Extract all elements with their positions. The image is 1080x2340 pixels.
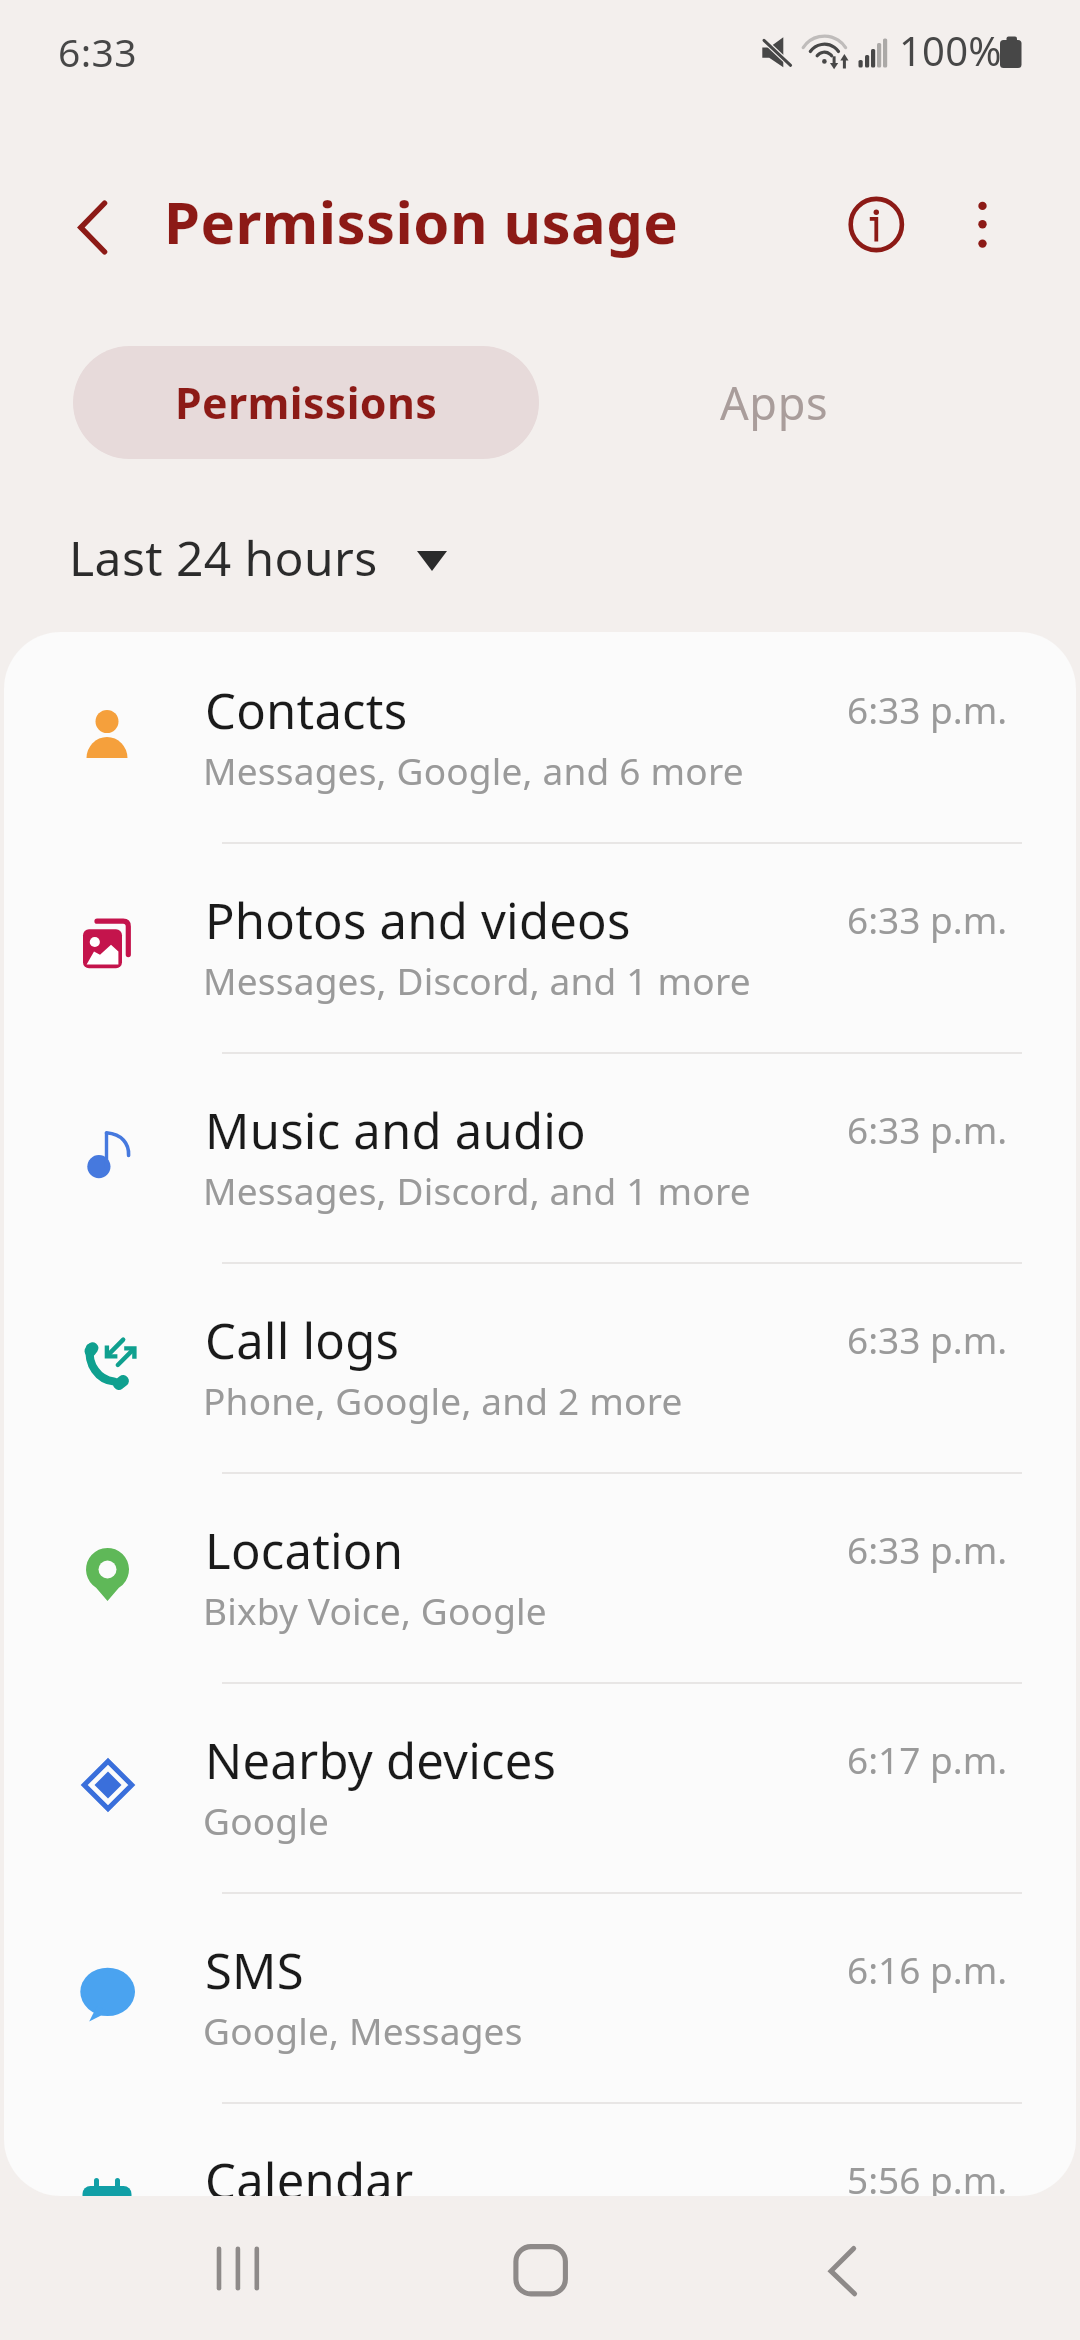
button[interactable]: Contacts bbox=[4, 632, 1076, 842]
staticText: Messages, Google, and 6 more bbox=[203, 745, 744, 795]
staticText: Photos and videos bbox=[205, 887, 631, 954]
staticText: 6:16 p.m. bbox=[847, 1944, 1008, 1994]
staticText: 6:33 bbox=[58, 25, 137, 78]
staticText: Location bbox=[205, 1517, 404, 1584]
staticText: Messages, Discord, and 1 more bbox=[203, 955, 751, 1005]
button[interactable]: Recent apps bbox=[190, 2198, 286, 2294]
staticText: Permission usage bbox=[164, 182, 679, 261]
staticText: 6:33 p.m. bbox=[847, 684, 1008, 734]
staticText: Call logs bbox=[205, 1307, 400, 1374]
staticText: Bixby Voice, Google bbox=[203, 1585, 547, 1635]
button[interactable]: Music and audio bbox=[4, 1052, 1076, 1262]
button[interactable]: Nearby devices bbox=[4, 1682, 1076, 1892]
staticText: 6:33 p.m. bbox=[847, 1314, 1008, 1364]
button[interactable]: Location bbox=[4, 1472, 1076, 1682]
staticText: Last 24 hours bbox=[69, 525, 378, 590]
button[interactable]: More options bbox=[934, 176, 1030, 272]
staticText: Nearby devices bbox=[205, 1727, 557, 1794]
staticText: 6:17 p.m. bbox=[847, 1734, 1008, 1784]
button[interactable]: Information bbox=[828, 176, 924, 272]
staticText: Apps bbox=[720, 372, 829, 433]
staticText: Permissions bbox=[175, 373, 438, 432]
button[interactable]: Apps bbox=[539, 346, 1009, 459]
staticText: 5:56 p.m. bbox=[847, 2154, 1008, 2196]
button[interactable]: Call logs bbox=[4, 1262, 1076, 1472]
button[interactable]: Home bbox=[490, 2198, 586, 2294]
staticText: 100% bbox=[899, 23, 1002, 77]
staticText: Google bbox=[203, 1795, 330, 1845]
staticText: SMS bbox=[205, 1937, 304, 2004]
button[interactable]: SMS bbox=[4, 1892, 1076, 2102]
button[interactable]: Permissions bbox=[73, 346, 539, 459]
button[interactable]: Calendar bbox=[4, 2102, 1076, 2196]
staticText: Contacts bbox=[205, 677, 408, 744]
button[interactable]: Navigate up bbox=[52, 174, 148, 270]
button[interactable]: Last 24 hours bbox=[69, 509, 447, 605]
staticText: Phone, Google, and 2 more bbox=[203, 1375, 683, 1425]
staticText: 6:33 p.m. bbox=[847, 1524, 1008, 1574]
button[interactable]: Back bbox=[794, 2198, 890, 2294]
button[interactable]: Photos and videos bbox=[4, 842, 1076, 1052]
staticText: Google, Messages bbox=[203, 2005, 523, 2055]
staticText: Calendar bbox=[205, 2147, 414, 2196]
staticText: 6:33 p.m. bbox=[847, 1104, 1008, 1154]
staticText: Music and audio bbox=[205, 1097, 586, 1164]
staticText: Messages, Discord, and 1 more bbox=[203, 1165, 751, 1215]
staticText: 6:33 p.m. bbox=[847, 894, 1008, 944]
